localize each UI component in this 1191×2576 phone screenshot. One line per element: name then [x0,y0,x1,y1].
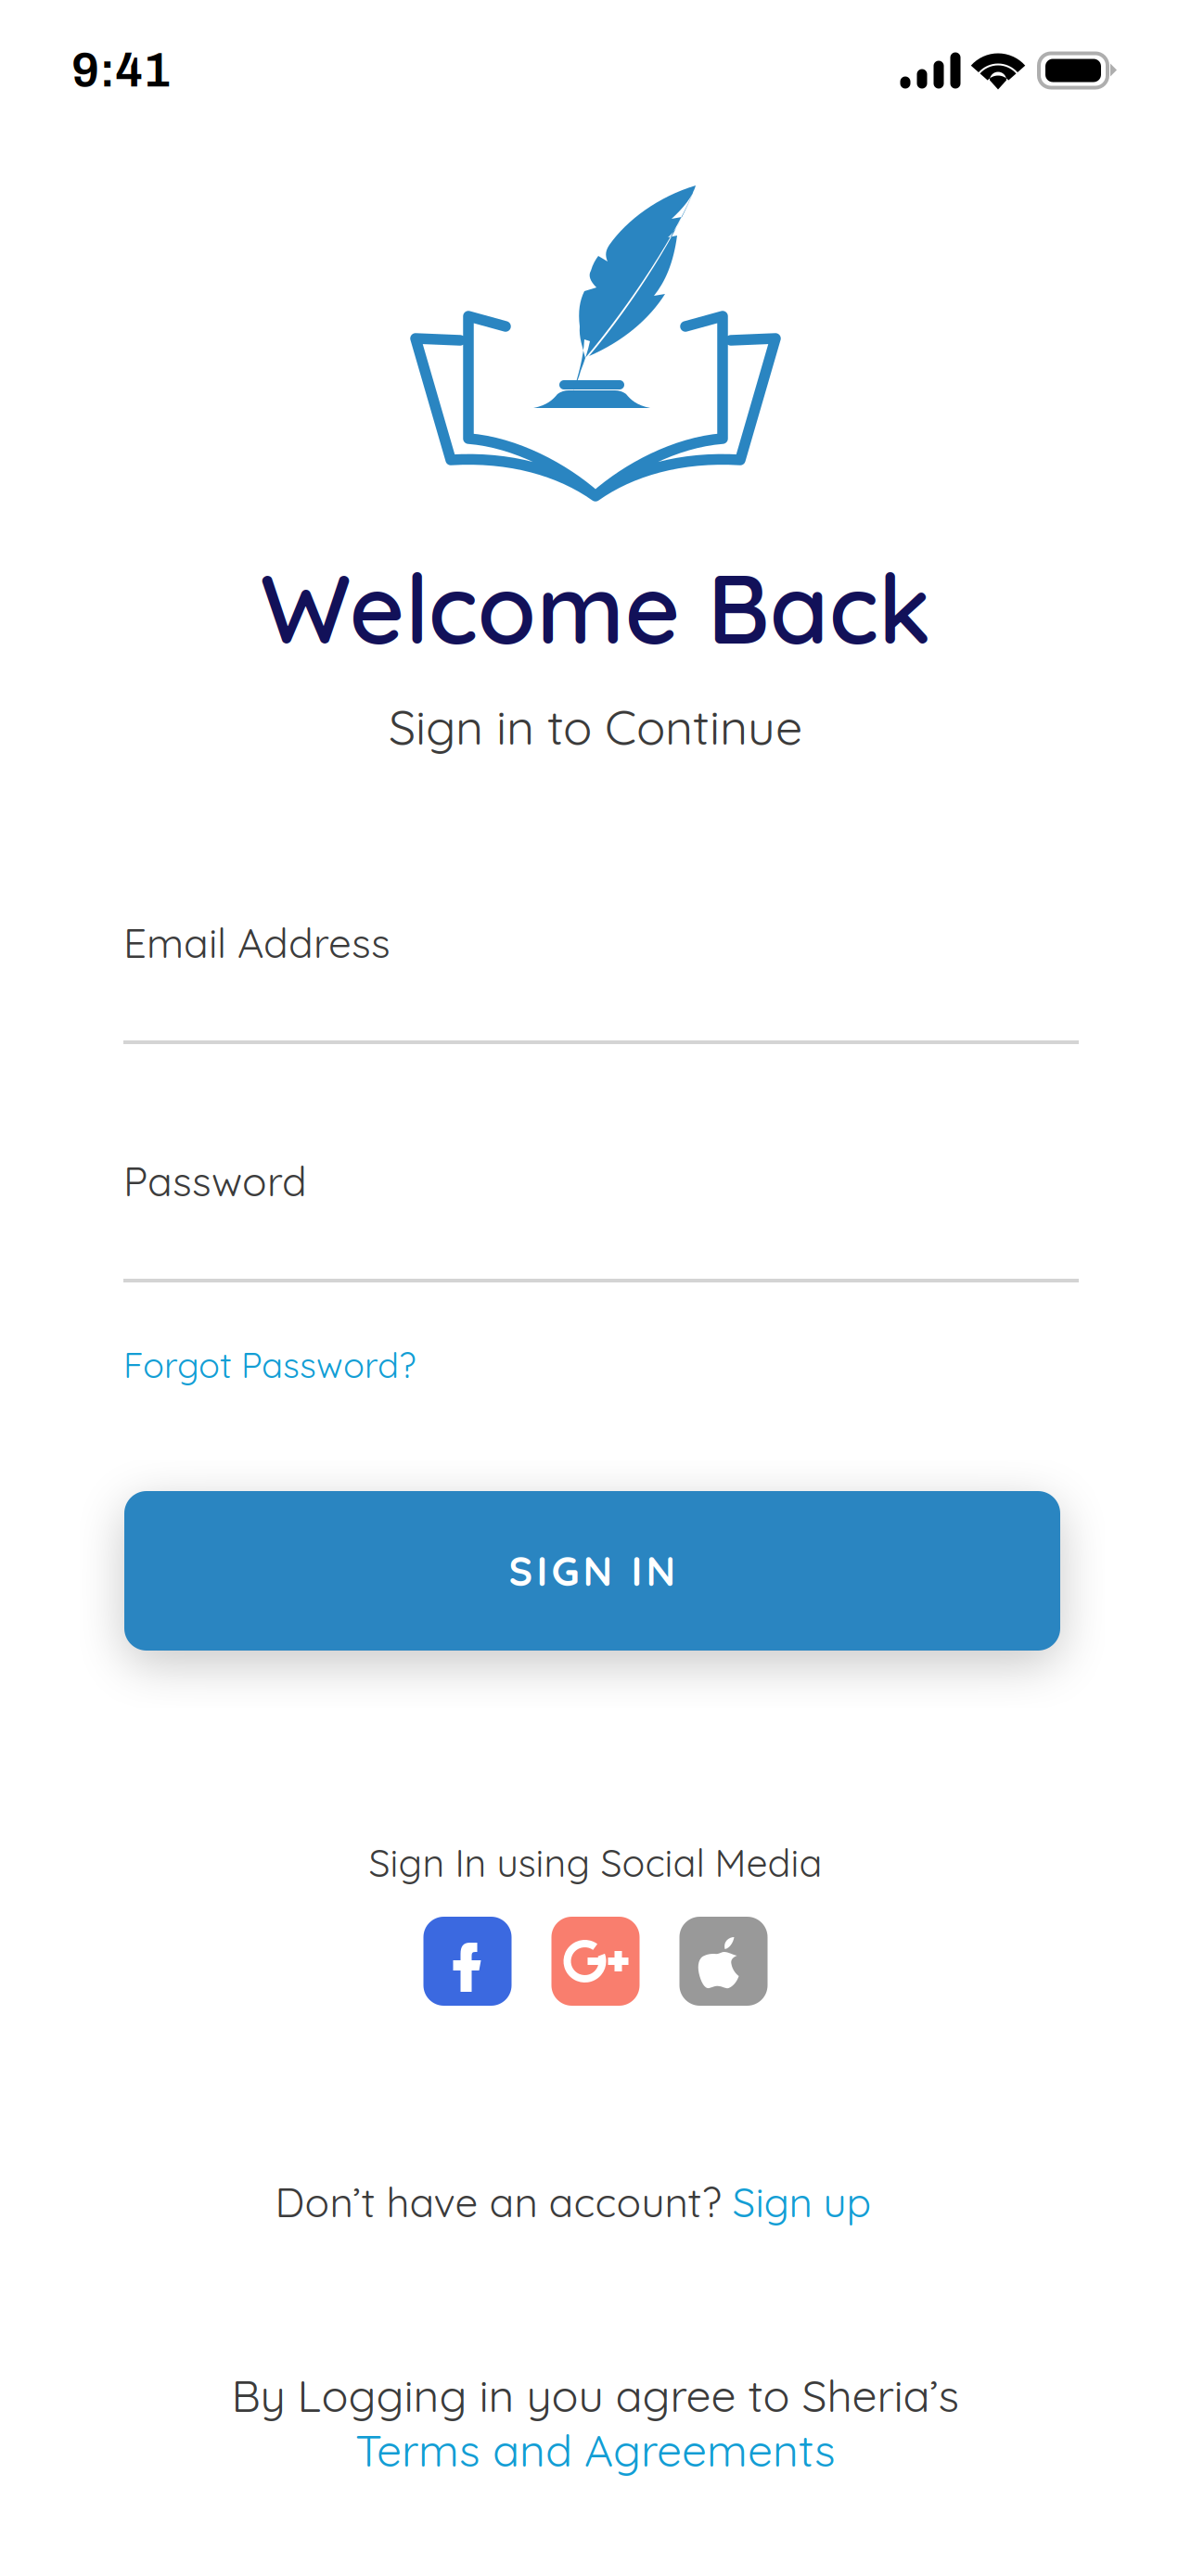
staticText: Don’t have an account? [275,2176,732,2227]
button[interactable]: Sign in with Apple [679,1917,768,2006]
button[interactable]: Forgot Password? [123,1343,416,1387]
button[interactable]: SIGN IN [124,1491,1060,1651]
staticText: Sign up [732,2176,871,2227]
button[interactable]: Sign in with Google [551,1917,640,2006]
staticText: 9:41 [71,44,171,97]
staticText: Forgot Password? [123,1343,416,1387]
button[interactable]: Sign up [732,2176,871,2227]
button[interactable]: Sign in with Facebook [423,1917,512,2006]
staticText: Email Address [123,917,391,968]
staticText: Sign In using Social Media [369,1839,822,1886]
staticText: Password [123,1155,307,1206]
staticText: Sign in to Continue [389,696,802,757]
staticText: Terms and Agreements [355,2422,836,2478]
staticText: By Logging in you agree to Sheria’s [231,2367,960,2423]
button[interactable]: Terms and Agreements [355,2422,836,2478]
staticText: SIGN IN [509,1546,676,1596]
staticText: Welcome Back [260,548,931,667]
